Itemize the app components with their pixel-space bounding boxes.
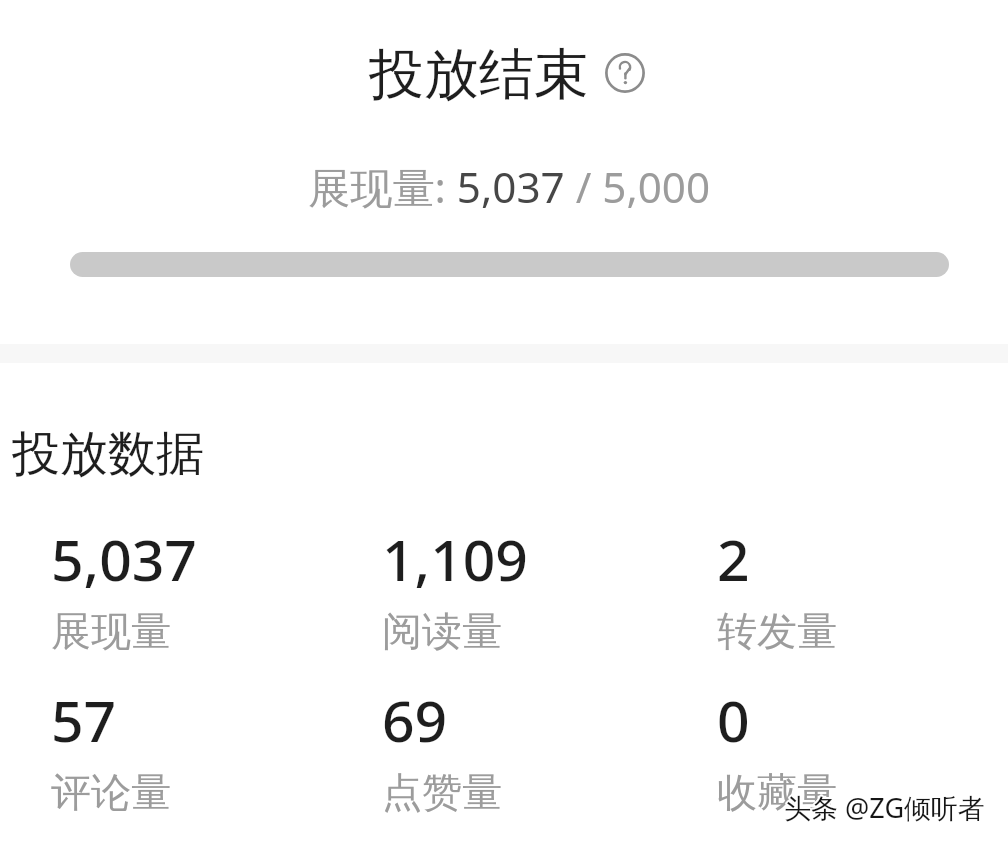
staticText: 阅读量 xyxy=(382,606,502,655)
staticText: 展现量 xyxy=(51,606,171,655)
staticText: 头条 @ZG倾听者 xyxy=(783,789,985,826)
staticText: 投放数据 xyxy=(12,424,204,484)
staticText: 头条 @ZG倾听者 xyxy=(785,788,987,825)
staticText: 5,037 xyxy=(51,520,197,598)
staticText: 头条 @ZG倾听者 xyxy=(785,790,987,827)
staticText: 2 xyxy=(717,520,750,598)
button[interactable]: 1,109 xyxy=(336,500,672,655)
button[interactable]: 69 xyxy=(336,661,672,816)
staticText: 1,109 xyxy=(382,520,528,598)
staticText: 头条 @ZG倾听者 xyxy=(784,787,986,824)
staticText: 头条 @ZG倾听者 xyxy=(784,791,986,828)
staticText: 头条 @ZG倾听者 xyxy=(783,790,985,827)
staticText: 头条 @ZG倾听者 xyxy=(785,789,987,826)
staticText: 头条 @ZG倾听者 xyxy=(786,789,988,826)
staticText: 点赞量 xyxy=(382,767,502,816)
button[interactable]: 5,037 xyxy=(0,500,336,655)
button[interactable]: 2 xyxy=(671,500,1007,655)
staticText: 展现量: 5,037 / 5,000 xyxy=(308,158,711,216)
staticText: 头条 @ZG倾听者 xyxy=(784,789,986,826)
staticText: 57 xyxy=(51,681,117,759)
staticText: 转发量 xyxy=(717,606,837,655)
button[interactable]: 57 xyxy=(0,661,336,816)
staticText: 收藏量 xyxy=(717,767,837,816)
staticText: 评论量 xyxy=(51,767,171,816)
staticText: 69 xyxy=(382,681,448,759)
staticText: 头条 @ZG倾听者 xyxy=(782,789,984,826)
staticText: 投放结束 xyxy=(369,40,589,109)
staticText: 头条 @ZG倾听者 xyxy=(783,788,985,825)
staticText: 0 xyxy=(717,681,750,759)
staticText: 头条 @ZG倾听者 xyxy=(784,790,986,827)
button[interactable]: 0 xyxy=(671,661,1007,816)
staticText: 头条 @ZG倾听者 xyxy=(784,788,986,825)
button[interactable]: Help, what does 投放结束 mean xyxy=(603,53,647,97)
